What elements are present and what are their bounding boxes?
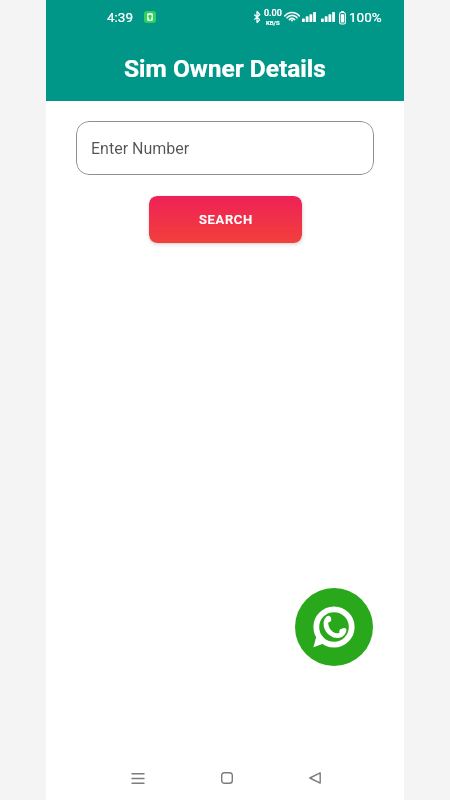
staticText: Enter Number (91, 139, 190, 158)
staticText: 100% (349, 9, 382, 25)
button[interactable]: Chat on WhatsApp (295, 588, 373, 666)
button[interactable]: Enter Number (76, 121, 374, 175)
staticText: 0.00 (264, 8, 282, 19)
staticText: 4:39 (107, 9, 134, 25)
button[interactable]: SEARCH (149, 196, 302, 243)
button[interactable]: Recent apps (116, 756, 160, 800)
button[interactable]: Back (293, 756, 337, 800)
button[interactable]: Home (205, 756, 249, 800)
staticText: KB/S (266, 19, 280, 26)
staticText: Sim Owner Details (124, 54, 326, 83)
staticText: SEARCH (199, 212, 253, 227)
